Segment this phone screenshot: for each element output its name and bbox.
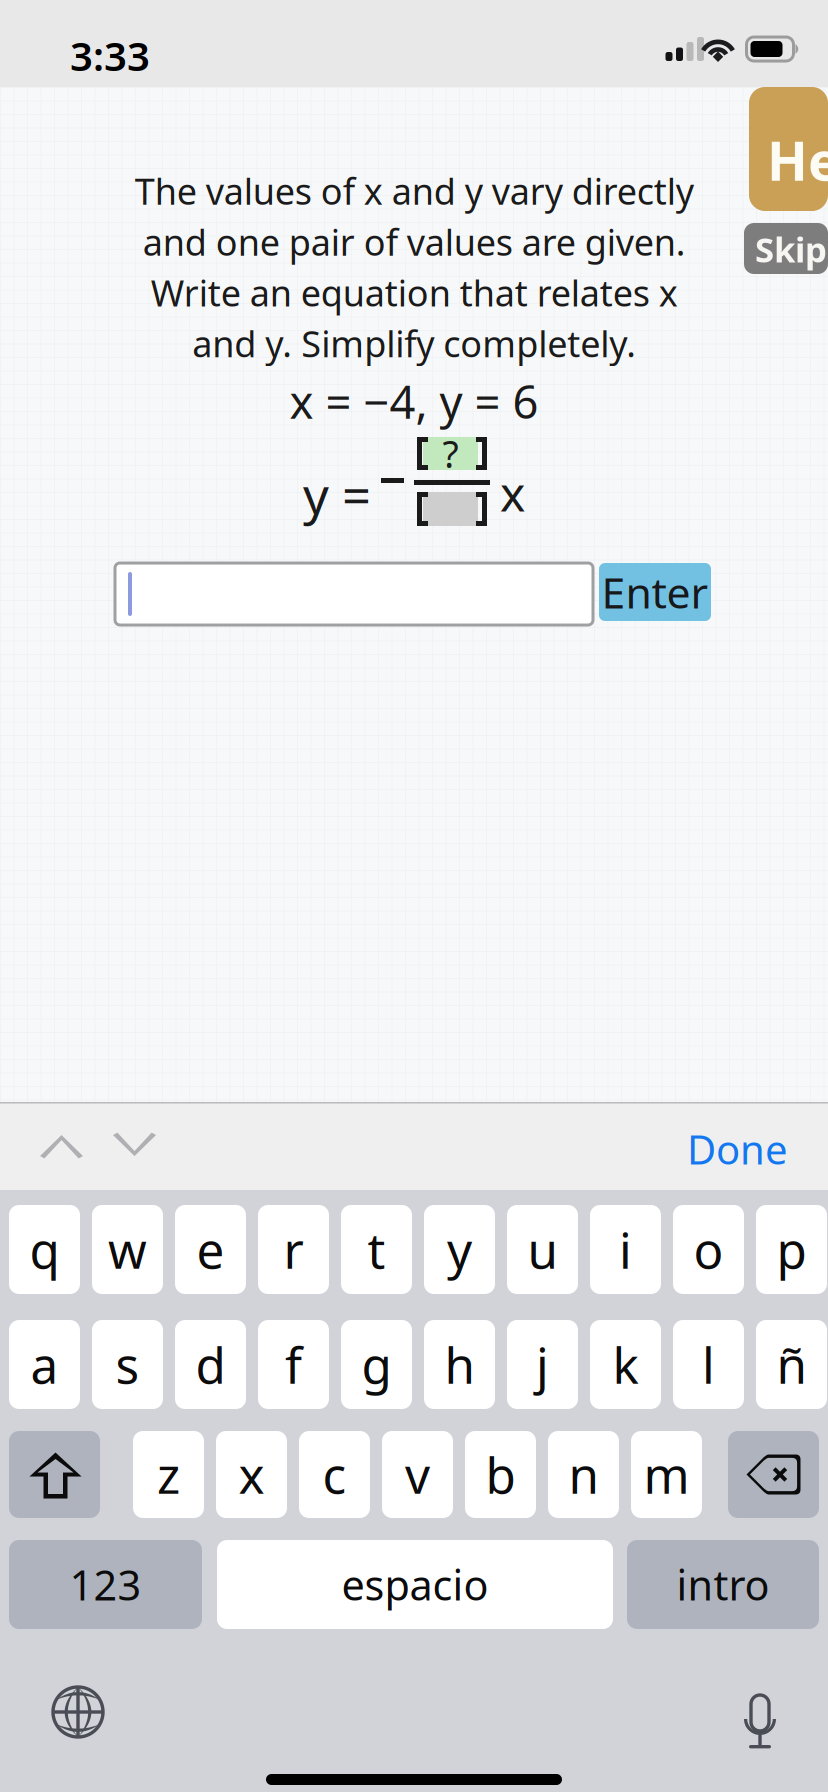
button[interactable]: Switch keyboard [50, 1684, 106, 1740]
staticText: g [361, 1332, 391, 1397]
staticText: t [367, 1217, 385, 1282]
staticText: m [643, 1442, 689, 1507]
button[interactable]: 123 [9, 1540, 202, 1629]
staticText: ñ [776, 1332, 806, 1397]
button[interactable]: m [631, 1431, 702, 1518]
staticText: v [405, 1442, 430, 1507]
staticText: y [447, 1217, 472, 1282]
staticText: espacio [341, 1557, 488, 1612]
button[interactable]: a [9, 1320, 80, 1409]
staticText: q [29, 1217, 59, 1282]
button[interactable]: z [133, 1431, 204, 1518]
staticText: k [612, 1332, 638, 1397]
button[interactable]: Next field [113, 1135, 156, 1160]
button[interactable]: t [341, 1205, 412, 1294]
button[interactable]: v [382, 1431, 453, 1518]
staticText: x [238, 1442, 264, 1507]
button[interactable]: f [258, 1320, 329, 1409]
staticText: h [444, 1332, 474, 1397]
staticText: d [195, 1332, 225, 1397]
button[interactable]: i [590, 1205, 661, 1294]
staticText: i [619, 1217, 632, 1282]
button[interactable]: Skip [744, 223, 828, 274]
staticText: e [196, 1217, 224, 1282]
button[interactable]: e [175, 1205, 246, 1294]
button[interactable]: Previous field [40, 1135, 83, 1160]
button[interactable]: Dictate [736, 1682, 776, 1744]
button[interactable]: intro [627, 1540, 819, 1629]
button[interactable]: s [92, 1320, 163, 1409]
staticText: r [283, 1217, 303, 1282]
staticText: x [500, 461, 525, 525]
staticText: a [30, 1332, 58, 1397]
button[interactable]: x [216, 1431, 287, 1518]
staticText: n [568, 1442, 598, 1507]
button[interactable]: k [590, 1320, 661, 1409]
staticText: c [322, 1442, 346, 1507]
staticText: 3:33 [70, 29, 150, 82]
button[interactable]: b [465, 1431, 536, 1518]
staticText: Skip [755, 226, 827, 272]
button[interactable]: r [258, 1205, 329, 1294]
button[interactable]: h [424, 1320, 495, 1409]
button[interactable]: c [299, 1431, 370, 1518]
staticText: y = [303, 461, 371, 528]
staticText: f [285, 1332, 302, 1397]
staticText: s [115, 1332, 139, 1397]
staticText: Enter [601, 564, 708, 620]
staticText: intro [676, 1557, 769, 1612]
button[interactable]: Delete [728, 1431, 819, 1518]
staticText: The values of x and y vary directly and … [134, 167, 693, 367]
staticText: 123 [69, 1557, 141, 1612]
button[interactable]: Shift [9, 1431, 100, 1518]
staticText: l [702, 1332, 715, 1397]
button[interactable]: Enter [599, 563, 711, 621]
button[interactable]: g [341, 1320, 412, 1409]
button[interactable]: ñ [756, 1320, 827, 1409]
button[interactable]: j [507, 1320, 578, 1409]
staticText: Help [767, 125, 828, 195]
staticText: z [157, 1442, 180, 1507]
staticText: ? [442, 429, 458, 478]
button[interactable]: p [756, 1205, 827, 1294]
staticText: p [776, 1217, 806, 1282]
button[interactable]: y [424, 1205, 495, 1294]
staticText: u [527, 1217, 557, 1282]
button[interactable]: u [507, 1205, 578, 1294]
button[interactable]: Done [588, 1127, 788, 1171]
staticText: b [485, 1442, 515, 1507]
button[interactable]: n [548, 1431, 619, 1518]
button[interactable]: q [9, 1205, 80, 1294]
staticText: Done [687, 1122, 788, 1175]
button[interactable]: Help [749, 87, 828, 211]
staticText: o [693, 1217, 723, 1282]
button[interactable]: w [92, 1205, 163, 1294]
button[interactable]: espacio [217, 1540, 613, 1629]
staticText: w [108, 1217, 147, 1282]
staticText: x = −4, y = 6 [289, 371, 538, 431]
button[interactable]: d [175, 1320, 246, 1409]
staticText: j [536, 1332, 549, 1397]
button[interactable]: l [673, 1320, 744, 1409]
button[interactable]: o [673, 1205, 744, 1294]
